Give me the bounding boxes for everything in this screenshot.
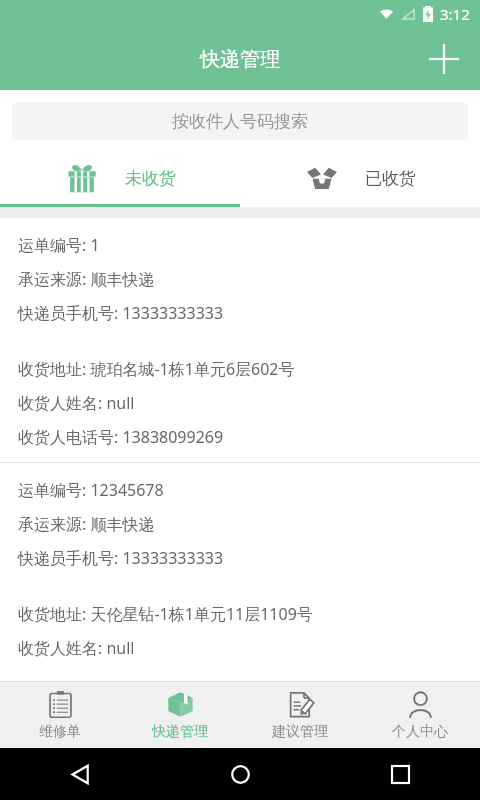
button[interactable]: 维修单 [0, 682, 120, 748]
staticText: 个人中心 [392, 723, 448, 741]
button[interactable]: 建议管理 [240, 682, 360, 748]
button[interactable]: 快递管理 [120, 682, 240, 748]
button[interactable]: Recents [320, 748, 480, 800]
staticText: 运单编号: 12345678 [18, 479, 164, 501]
button[interactable]: Add [422, 37, 466, 81]
button[interactable]: 运单编号: 12345678 [0, 463, 480, 681]
staticText: 维修单 [39, 723, 81, 741]
staticText: 快递员手机号: 13333333333 [18, 302, 224, 324]
staticText: 承运来源: 顺丰快递 [18, 268, 155, 290]
staticText: 3:12 [440, 4, 470, 24]
staticText: 收货地址: 琥珀名城-1栋1单元6层602号 [18, 358, 295, 380]
staticText: 按收件人号码搜索 [172, 111, 308, 132]
button[interactable]: 按收件人号码搜索 [12, 102, 468, 140]
staticText: 未收货 [125, 168, 176, 189]
button[interactable]: 已收货 [240, 152, 480, 204]
staticText: 快递员手机号: 13333333333 [18, 547, 224, 569]
staticText: 承运来源: 顺丰快递 [18, 513, 155, 535]
button[interactable]: Home [160, 748, 320, 800]
button[interactable]: 未收货 [0, 152, 240, 204]
staticText: 收货人电话号: 13838099269 [18, 426, 224, 448]
staticText: 已收货 [365, 168, 416, 189]
staticText: 收货地址: 天伦星钻-1栋1单元11层1109号 [18, 603, 313, 625]
staticText: 运单编号: 1 [18, 234, 100, 256]
button[interactable]: Back [0, 748, 160, 800]
button[interactable]: 运单编号: 1 [0, 218, 480, 462]
staticText: 快递管理 [152, 723, 208, 741]
button[interactable]: 个人中心 [360, 682, 480, 748]
staticText: 收货人姓名: null [18, 392, 135, 414]
staticText: 快递管理 [200, 47, 280, 72]
staticText: 建议管理 [272, 723, 328, 741]
staticText: 收货人姓名: null [18, 637, 135, 659]
